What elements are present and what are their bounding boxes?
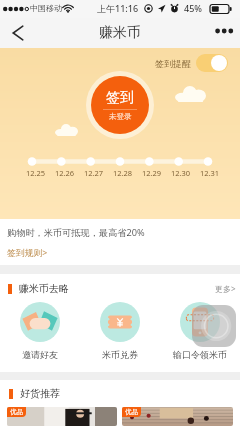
button[interactable]: Back <box>0 18 36 48</box>
button[interactable]: 米币兑券 <box>80 302 160 360</box>
button[interactable]: 签到 <box>91 76 149 134</box>
staticText: 上午11:16 <box>97 2 139 14</box>
staticText: 45% <box>184 2 202 14</box>
staticText: 赚米币去略 <box>19 282 69 295</box>
staticText: 邀请好友 <box>22 349 58 360</box>
staticText: 中国移动 <box>30 3 62 13</box>
button[interactable]: 更多> <box>215 283 236 294</box>
button[interactable]: 签到提醒 <box>155 54 228 72</box>
staticText: 更多> <box>215 283 236 294</box>
staticText: 米币兑券 <box>102 349 138 360</box>
staticText: 未登录 <box>109 112 132 121</box>
staticText: 12.29 <box>137 168 166 178</box>
button[interactable]: Assistive touch <box>192 305 236 347</box>
staticText: 12.26 <box>50 168 79 178</box>
staticText: 签到规则> <box>7 247 48 259</box>
staticText: 12.25 <box>21 168 50 178</box>
button[interactable]: 优品 <box>122 407 233 426</box>
button[interactable]: 优品 <box>7 407 117 426</box>
button[interactable]: 输口令领米币 <box>160 302 240 360</box>
staticText: 12.31 <box>195 168 224 178</box>
staticText: 签到提醒 <box>155 58 191 69</box>
staticText: 12.30 <box>166 168 195 178</box>
staticText: 12.28 <box>108 168 137 178</box>
button[interactable]: 签到规则> <box>7 247 48 259</box>
button[interactable]: More options <box>208 18 240 48</box>
staticText: 好货推荐 <box>20 387 60 400</box>
staticText: 赚米币 <box>99 24 141 42</box>
staticText: 购物时，米币可抵现，最高省20% <box>7 226 145 239</box>
staticText: 优品 <box>125 408 138 416</box>
staticText: 签到 <box>106 89 134 107</box>
staticText: 输口令领米币 <box>173 349 227 360</box>
staticText: 12.27 <box>79 168 108 178</box>
staticText: 优品 <box>10 408 23 416</box>
button[interactable]: 邀请好友 <box>0 302 80 360</box>
